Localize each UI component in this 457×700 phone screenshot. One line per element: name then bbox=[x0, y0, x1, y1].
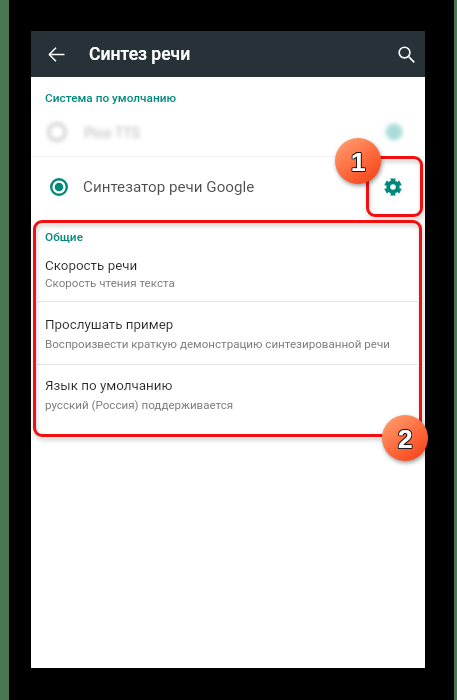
staticText: 1 bbox=[352, 148, 367, 177]
staticText: 1 bbox=[352, 146, 367, 175]
button[interactable]: Прослушать пример bbox=[31, 302, 425, 364]
button[interactable]: Settings bbox=[376, 170, 410, 204]
staticText: 2 bbox=[399, 425, 414, 454]
staticText: 2 bbox=[397, 424, 412, 453]
staticText: 2 bbox=[397, 425, 412, 454]
staticText: 2 bbox=[397, 423, 412, 452]
staticText: Система по умолчанию bbox=[45, 91, 177, 105]
button[interactable]: Search bbox=[388, 36, 424, 72]
staticText: 2 bbox=[399, 424, 414, 453]
staticText: 1 bbox=[351, 148, 366, 177]
staticText: 2 bbox=[398, 424, 413, 453]
staticText: Общие bbox=[45, 230, 83, 244]
staticText: 1 bbox=[352, 147, 367, 176]
staticText: Pico TTS bbox=[84, 125, 140, 141]
staticText: русский (Россия) поддерживается bbox=[45, 398, 234, 412]
button[interactable]: Скорость речи bbox=[31, 247, 425, 301]
button[interactable]: Back bbox=[38, 36, 74, 72]
button[interactable]: Язык по умолчанию bbox=[31, 365, 425, 426]
button[interactable]: Pico TTS bbox=[31, 106, 425, 156]
staticText: 1 bbox=[350, 148, 365, 177]
staticText: 1 bbox=[350, 147, 365, 176]
staticText: 2 bbox=[399, 423, 414, 452]
staticText: Прослушать пример bbox=[45, 317, 174, 333]
staticText: 1 bbox=[351, 146, 366, 175]
staticText: 1 bbox=[351, 147, 366, 176]
staticText: 2 bbox=[398, 423, 413, 452]
staticText: Скорость речи bbox=[45, 258, 138, 274]
button[interactable]: Синтезатор речи Google bbox=[31, 159, 425, 214]
staticText: Воспроизвести краткую демонстрацию синте… bbox=[45, 337, 390, 351]
staticText: Язык по умолчанию bbox=[45, 378, 173, 394]
staticText: Скорость чтения текста bbox=[45, 276, 175, 290]
staticText: Синтезатор речи Google bbox=[83, 178, 255, 196]
staticText: 2 bbox=[398, 425, 413, 454]
staticText: 1 bbox=[350, 146, 365, 175]
staticText: Синтез речи bbox=[89, 44, 191, 65]
